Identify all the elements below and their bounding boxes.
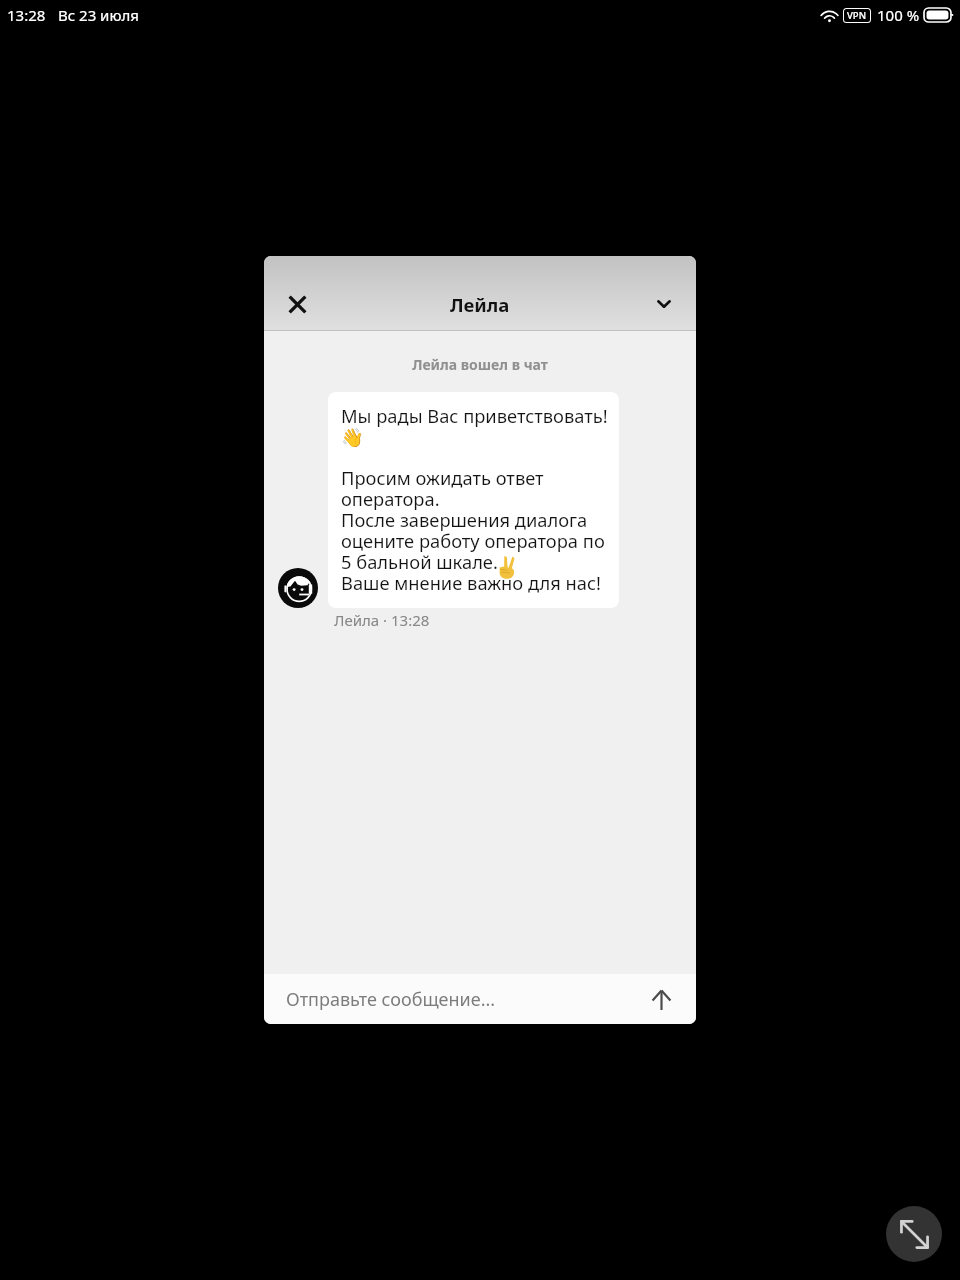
button[interactable]: Развернуть на весь экран: [886, 1206, 942, 1262]
staticText: Вс 23 июля: [58, 5, 139, 25]
staticText: VPN: [847, 9, 867, 22]
staticText: Лейла вошел в чат: [264, 355, 696, 374]
button[interactable]: Свернуть чат: [642, 282, 686, 326]
button[interactable]: Отправить сообщение: [642, 980, 680, 1018]
staticText: 13:28: [7, 5, 46, 25]
staticText: 100 %: [877, 5, 920, 25]
staticText: Лейла · 13:28: [334, 610, 430, 630]
button[interactable]: Закрыть чат: [275, 282, 319, 326]
staticText: Отправьте сообщение...: [286, 987, 496, 1012]
button[interactable]: Мы рады Вас приветствовать! 👋 Просим ожи…: [328, 392, 619, 608]
staticText: Лейла: [450, 292, 510, 317]
staticText: Мы рады Вас приветствовать! 👋 Просим ожи…: [341, 403, 608, 596]
